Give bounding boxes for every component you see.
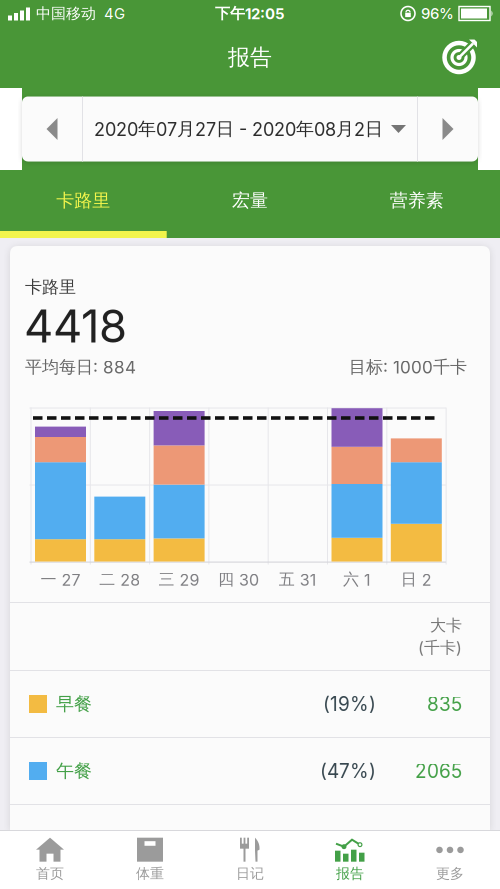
staticText: (19%): [323, 692, 376, 715]
button[interactable]: 报告: [300, 831, 400, 889]
staticText: 2020年07月27日 - 2020年08月2日: [94, 118, 383, 140]
button[interactable]: 目标: [442, 38, 478, 76]
button[interactable]: 首页: [0, 831, 100, 889]
staticText: 营养素: [390, 189, 444, 212]
button[interactable]: 上一周: [22, 96, 82, 161]
staticText: (47%): [320, 759, 376, 782]
staticText: 96%: [421, 4, 454, 23]
staticText: 报告: [228, 44, 272, 71]
staticText: 下午12:05: [215, 4, 285, 23]
staticText: 日记: [236, 865, 264, 882]
staticText: 五 31: [279, 569, 317, 590]
button[interactable]: 宏量: [167, 170, 333, 231]
staticText: 报告: [336, 865, 364, 882]
staticText: 六 1: [343, 569, 371, 590]
staticText: 卡路里: [56, 189, 110, 212]
staticText: 午餐: [56, 760, 92, 782]
staticText: 835: [427, 692, 462, 715]
button[interactable]: 营养素: [333, 170, 500, 231]
staticText: 二 28: [99, 569, 140, 590]
staticText: 体重: [136, 865, 164, 882]
staticText: 大卡: [430, 615, 462, 635]
staticText: 4G: [104, 4, 125, 23]
staticText: 2065: [415, 759, 462, 782]
staticText: 4418: [24, 299, 127, 353]
staticText: 三 29: [159, 569, 200, 590]
staticText: 宏量: [232, 189, 268, 212]
staticText: 早餐: [56, 693, 92, 715]
button[interactable]: 下一周: [418, 96, 478, 161]
staticText: 目标: 1000千卡: [349, 356, 467, 378]
staticText: 日 2: [401, 569, 432, 590]
button[interactable]: 卡路里: [0, 170, 167, 231]
staticText: 中国移动: [36, 4, 96, 23]
staticText: 四 30: [218, 569, 259, 590]
button[interactable]: 日记: [200, 831, 300, 889]
staticText: 平均每日: 884: [25, 356, 136, 378]
staticText: 更多: [436, 865, 464, 882]
button[interactable]: 体重: [100, 831, 200, 889]
button[interactable]: 选择日期范围: [94, 96, 406, 161]
staticText: 一 27: [40, 569, 80, 590]
staticText: (千卡): [418, 637, 462, 658]
button[interactable]: 更多: [400, 831, 500, 889]
staticText: 卡路里: [25, 276, 76, 298]
staticText: 首页: [36, 865, 64, 882]
